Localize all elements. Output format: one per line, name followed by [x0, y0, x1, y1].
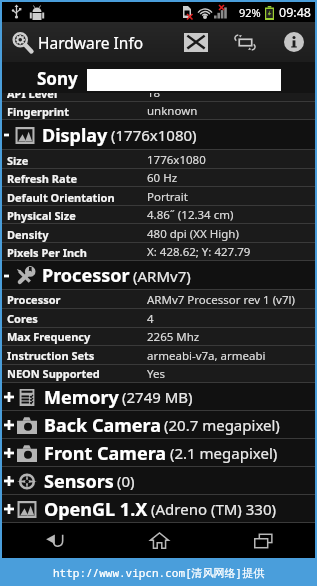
staticText: Portrait [147, 189, 188, 205]
button[interactable]: Front Camera [2, 439, 315, 467]
staticText: C6833 [147, 66, 181, 82]
staticText: X: 428.62; Y: 427.79 [147, 244, 251, 260]
staticText: http://www.vipcn.com[清风网络]提供 [53, 565, 265, 580]
staticText: ARMv7 Processor rev 1 (v7l) [147, 292, 295, 308]
button[interactable]: Back Camera [2, 411, 315, 439]
staticText: Display [42, 123, 108, 148]
staticText: Pixels Per Inch [7, 245, 87, 260]
staticText: (2.1 megapixel) [170, 443, 278, 463]
button[interactable]: Display [2, 120, 315, 150]
button[interactable]: OpenGL 1.X [2, 495, 315, 523]
staticText: 1776x1080 [147, 152, 206, 168]
button[interactable]: Cores [2, 309, 315, 328]
staticText: NEON Supported [7, 366, 100, 381]
staticText: Model [7, 67, 42, 82]
staticText: 92% [239, 5, 261, 20]
button[interactable]: Physical Size [2, 206, 315, 224]
staticText: Front Camera [44, 441, 167, 466]
staticText: Yes [147, 366, 165, 382]
staticText: 4.86˝ (12.34 cm) [147, 207, 234, 223]
staticText: Sony [37, 67, 78, 90]
button[interactable]: Pixels Per Inch [2, 243, 315, 261]
staticText: unknown [147, 103, 198, 119]
button[interactable]: Processor [2, 261, 315, 290]
button[interactable]: Processor [2, 290, 315, 309]
button[interactable]: API Level [2, 84, 315, 102]
staticText: 18 [147, 85, 161, 101]
staticText: Memory [44, 385, 119, 410]
staticText: Default Orientation [7, 190, 115, 205]
button[interactable]: Home [107, 523, 211, 558]
staticText: OpenGL 1.X [44, 497, 148, 522]
staticText: armeabi-v7a, armeabi [147, 348, 266, 364]
staticText: Fingerprint [7, 104, 69, 119]
staticText: (0) [117, 471, 135, 491]
button[interactable]: Rotate screen [223, 22, 267, 62]
staticText: Processor [7, 292, 61, 307]
staticText: Max Frequency [7, 329, 91, 344]
button[interactable]: Sensors [2, 467, 315, 495]
staticText: Refresh Rate [7, 171, 77, 186]
button[interactable]: NEON Supported [2, 364, 315, 383]
staticText: 2265 Mhz [147, 329, 200, 345]
staticText: Back Camera [44, 413, 161, 438]
staticText: (1776x1080) [111, 125, 197, 145]
staticText: 60 Hz [147, 170, 178, 186]
staticText: Instruction Sets [7, 348, 95, 363]
staticText: Processor [42, 263, 130, 288]
button[interactable]: Instruction Sets [2, 346, 315, 365]
staticText: 09:48 [279, 4, 311, 21]
button[interactable]: Model [2, 65, 315, 83]
button[interactable]: Density [2, 225, 315, 243]
staticText: API Level [7, 86, 58, 101]
staticText: 480 dpi (XX High) [147, 226, 239, 242]
staticText: 4 [147, 311, 154, 327]
staticText: Physical Size [7, 208, 76, 223]
button[interactable]: Size [2, 151, 315, 169]
staticText: Size [7, 153, 29, 168]
staticText: Hardware Info [38, 32, 144, 53]
staticText: (ARMv7) [133, 266, 191, 286]
button[interactable]: Max Frequency [2, 327, 315, 346]
staticText: Sensors [44, 469, 114, 494]
staticText: Density [7, 227, 49, 242]
button[interactable]: Default Orientation [2, 188, 315, 206]
staticText: Cores [7, 311, 38, 326]
staticText: (Adreno (TM) 330) [151, 499, 276, 519]
button[interactable]: Email report [174, 22, 218, 62]
button[interactable]: Recent apps [211, 523, 315, 558]
staticText: (20.7 megapixel) [164, 415, 280, 435]
button[interactable]: Memory [2, 383, 315, 411]
button[interactable]: About [272, 22, 316, 62]
button[interactable]: Fingerprint [2, 102, 315, 120]
staticText: (2749 MB) [122, 387, 193, 407]
button[interactable]: Back [2, 523, 107, 558]
button[interactable]: Refresh Rate [2, 169, 315, 187]
